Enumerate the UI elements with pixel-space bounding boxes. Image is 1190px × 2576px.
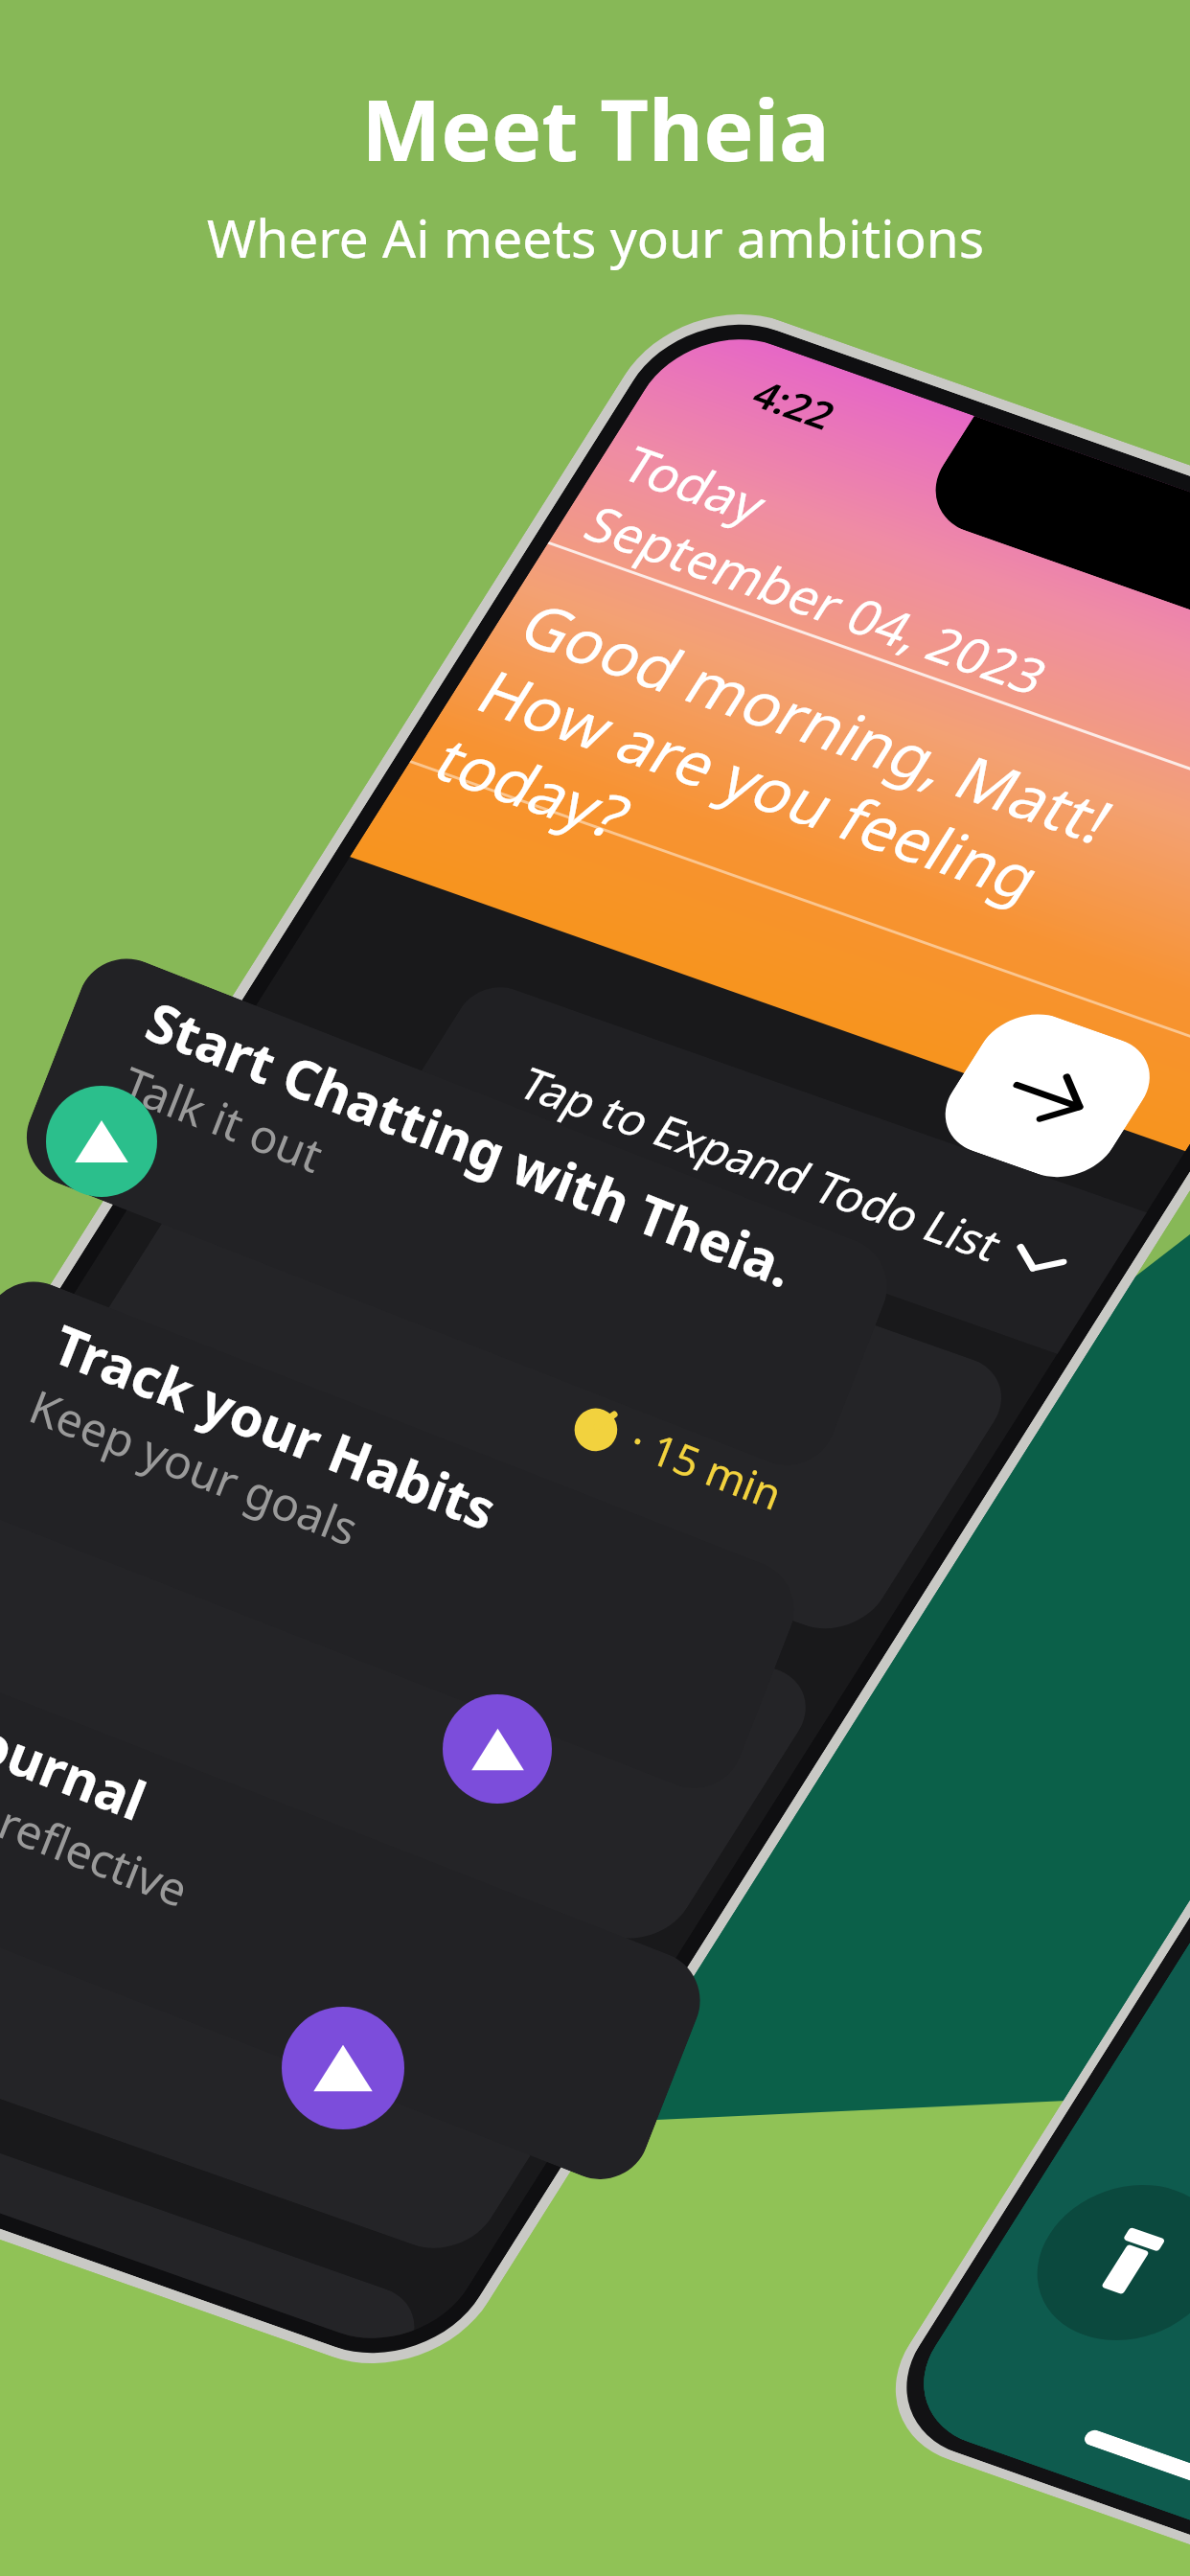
- staticText: Tap to Expand Todo List: [495, 920, 1028, 1407]
- button[interactable]: [0, 1190, 892, 2173]
- button[interactable]: Journal: [282, 2007, 404, 2129]
- staticText: Today: [595, 393, 796, 575]
- staticText: Track your Habits: [44, 1307, 508, 1546]
- staticText: Start Chatting with Theia.: [137, 984, 805, 1303]
- staticText: Where Ai meets your ambitions: [207, 201, 984, 273]
- button[interactable]: Track your Habits: [0, 1267, 809, 1803]
- staticText: Good morning, Matt! How are you feeling …: [368, 420, 1182, 1159]
- staticText: Keep your goals: [21, 1375, 368, 1559]
- staticText: Talk it out: [114, 1052, 332, 1186]
- button[interactable]: Start Chatting with Theia.: [12, 944, 902, 1480]
- staticText: September 04, 2023: [557, 362, 1077, 836]
- button[interactable]: Start chatting: [46, 1086, 157, 1197]
- staticText: Be reflective: [0, 1766, 197, 1920]
- button[interactable]: [0, 1500, 697, 2483]
- button[interactable]: Tap to Expand Todo List: [356, 789, 1182, 1542]
- button[interactable]: Continue: [892, 956, 1190, 1236]
- button[interactable]: [5, 880, 1088, 1864]
- button[interactable]: Track habits: [443, 1694, 552, 1804]
- button[interactable]: Flashlight: [968, 2117, 1190, 2408]
- button[interactable]: Journal: [0, 1658, 715, 2194]
- staticText: Meet Theia: [361, 71, 830, 186]
- staticText: Journal: [0, 1698, 157, 1836]
- staticText: 4:22: [731, 347, 858, 461]
- staticText: · 15 min: [622, 1411, 790, 1523]
- button[interactable]: [0, 1809, 447, 2576]
